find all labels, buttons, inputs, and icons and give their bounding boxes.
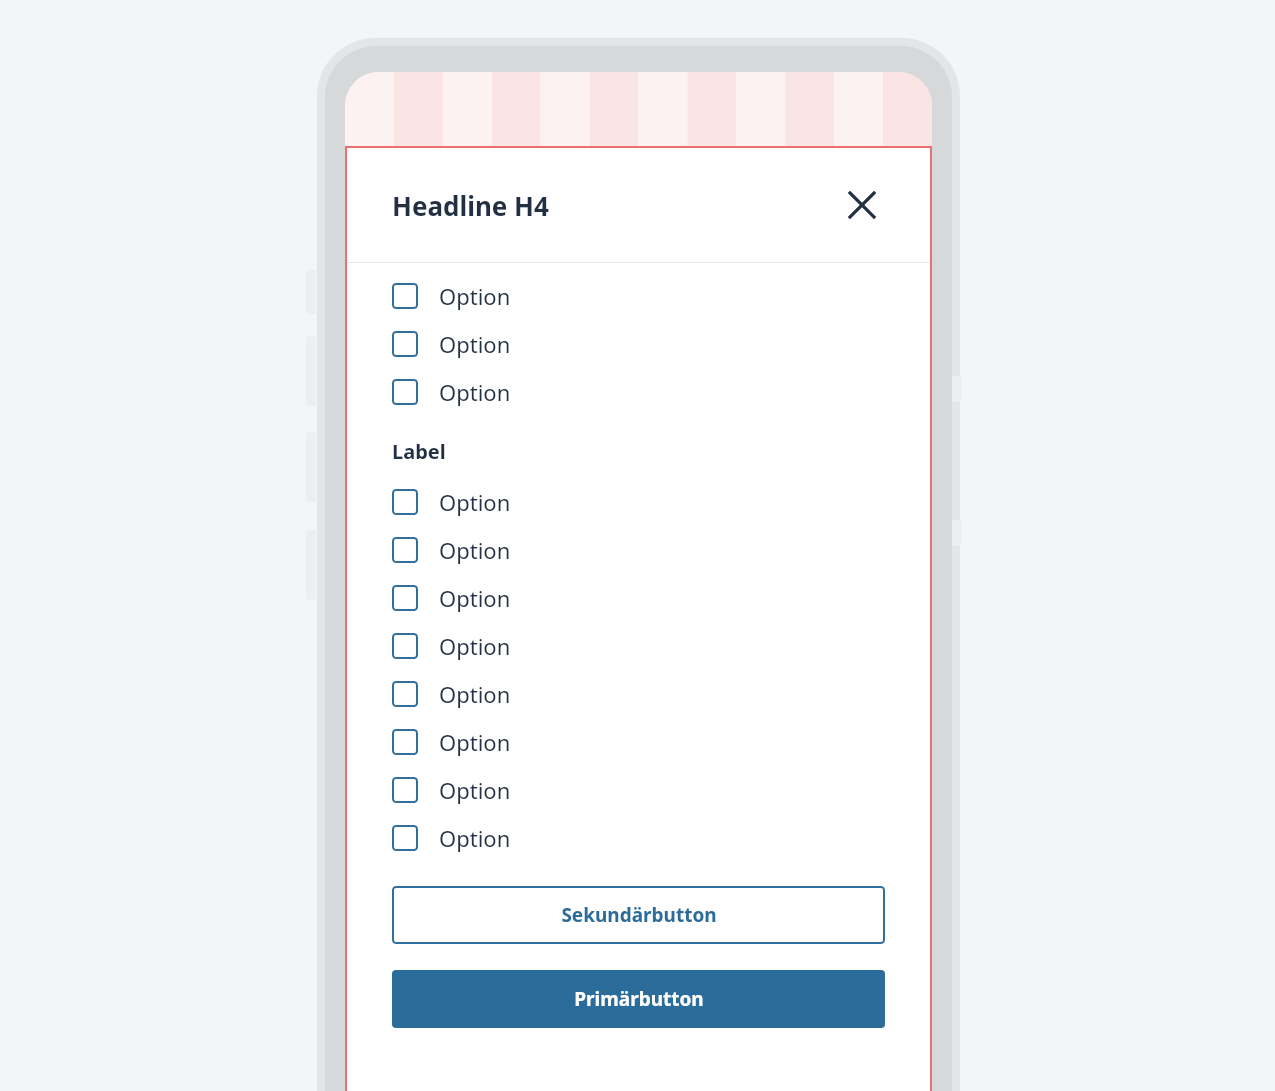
staticText: Option: [439, 823, 511, 853]
button[interactable]: Option: [345, 368, 932, 416]
staticText: Option: [439, 727, 511, 757]
button[interactable]: Sekundärbutton: [392, 886, 885, 944]
button[interactable]: Option: [345, 814, 932, 862]
staticText: Primärbutton: [574, 986, 704, 1012]
button[interactable]: Primärbutton: [392, 970, 885, 1028]
button[interactable]: Option: [345, 670, 932, 718]
staticText: Headline H4: [392, 188, 549, 223]
button[interactable]: Option: [345, 574, 932, 622]
staticText: Option: [439, 583, 511, 613]
staticText: Option: [439, 775, 511, 805]
button[interactable]: Option: [345, 272, 932, 320]
staticText: Option: [439, 377, 511, 407]
button[interactable]: Option: [345, 320, 932, 368]
staticText: Option: [439, 329, 511, 359]
button[interactable]: Option: [345, 718, 932, 766]
staticText: Option: [439, 487, 511, 517]
button[interactable]: Close: [842, 185, 882, 225]
button[interactable]: Option: [345, 766, 932, 814]
staticText: Label: [392, 438, 446, 465]
staticText: Option: [439, 631, 511, 661]
staticText: Option: [439, 535, 511, 565]
staticText: Sekundärbutton: [561, 902, 717, 928]
staticText: Option: [439, 679, 511, 709]
button[interactable]: Option: [345, 526, 932, 574]
button[interactable]: Option: [345, 622, 932, 670]
button[interactable]: Option: [345, 478, 932, 526]
staticText: Option: [439, 281, 511, 311]
